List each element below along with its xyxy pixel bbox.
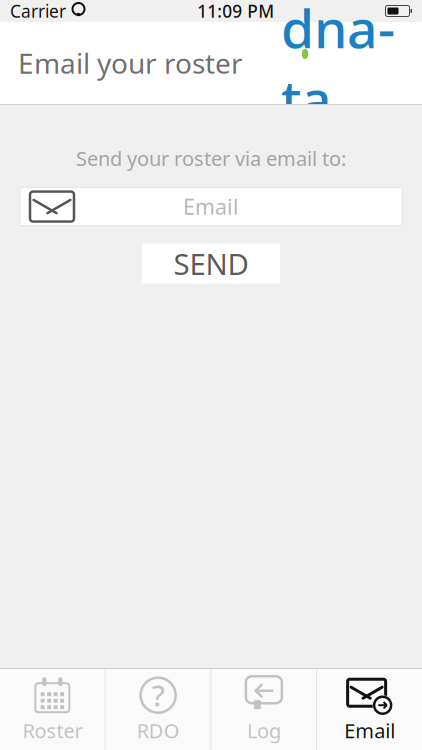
button[interactable]: Email	[20, 188, 402, 226]
staticText: Email your roster	[18, 44, 243, 82]
button[interactable]: Email	[317, 669, 422, 750]
button[interactable]: Log	[211, 669, 316, 750]
staticText: SEND	[173, 244, 248, 283]
staticText: Email	[183, 192, 239, 221]
staticText: Roster	[22, 717, 82, 744]
button[interactable]: SEND	[142, 244, 280, 284]
staticText: 11:09 PM	[197, 0, 274, 22]
button[interactable]: ?	[106, 669, 211, 750]
staticText: dnata	[281, 0, 395, 134]
button[interactable]: Roster	[0, 669, 105, 750]
staticText: Email	[344, 717, 395, 744]
staticText: Carrier	[10, 0, 66, 22]
staticText: ?	[152, 676, 165, 715]
staticText: RDO	[137, 717, 180, 744]
staticText: Log	[247, 717, 281, 744]
staticText: Send your roster via email to:	[76, 145, 346, 172]
